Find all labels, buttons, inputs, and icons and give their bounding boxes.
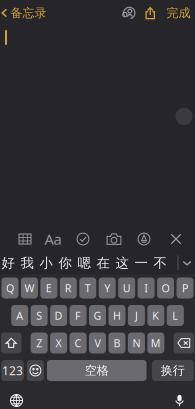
staticText: E xyxy=(46,281,52,295)
button[interactable]: Camera xyxy=(100,227,127,251)
staticText: 我 xyxy=(20,255,33,271)
button[interactable]: Close xyxy=(162,227,189,251)
button[interactable]: H xyxy=(108,305,125,326)
button[interactable]: L xyxy=(167,305,184,326)
staticText: S xyxy=(36,308,42,323)
button[interactable]: A xyxy=(11,305,28,326)
staticText: T xyxy=(85,281,91,295)
staticText: B xyxy=(113,336,120,350)
button[interactable]: I xyxy=(138,277,155,298)
button[interactable]: M xyxy=(147,332,164,353)
button[interactable]: B xyxy=(108,332,125,353)
staticText: 小 xyxy=(39,255,52,271)
staticText: W xyxy=(24,281,34,295)
staticText: L xyxy=(172,308,178,323)
staticText: N xyxy=(132,336,140,350)
button[interactable]: Y xyxy=(99,277,116,298)
button[interactable]: 我 xyxy=(17,253,36,273)
button[interactable]: C xyxy=(70,332,87,353)
button[interactable]: More candidates xyxy=(178,253,195,273)
button[interactable]: 换行 xyxy=(152,360,194,381)
button[interactable]: D xyxy=(50,305,67,326)
button[interactable]: G xyxy=(89,305,106,326)
button[interactable]: S xyxy=(31,305,48,326)
staticText: X xyxy=(56,336,62,350)
button[interactable]: Markup xyxy=(130,227,157,251)
staticText: O xyxy=(162,281,170,295)
staticText: I xyxy=(144,281,148,295)
staticText: 不 xyxy=(153,255,166,271)
button[interactable]: 在 xyxy=(93,253,112,273)
button[interactable]: P xyxy=(176,277,193,298)
staticText: 备忘录 xyxy=(10,6,46,20)
button[interactable]: R xyxy=(60,277,77,298)
button[interactable]: Quick Note xyxy=(175,108,192,125)
button[interactable]: 完成 xyxy=(161,2,195,24)
staticText: 一 xyxy=(134,255,147,271)
staticText: 好 xyxy=(1,255,14,271)
staticText: K xyxy=(152,308,159,323)
staticText: Aa xyxy=(44,229,61,249)
button[interactable]: 一 xyxy=(131,253,150,273)
button[interactable]: 备忘录 xyxy=(0,1,50,25)
button[interactable]: X xyxy=(50,332,67,353)
button[interactable]: Delete xyxy=(173,332,194,353)
staticText: H xyxy=(113,308,121,323)
button[interactable]: 你 xyxy=(55,253,74,273)
button[interactable]: 小 xyxy=(36,253,55,273)
staticText: J xyxy=(135,308,138,323)
staticText: 空格 xyxy=(85,363,109,378)
button[interactable]: Dictate xyxy=(168,389,191,409)
staticText: 嗯 xyxy=(77,255,90,271)
button[interactable]: Share xyxy=(139,3,161,23)
staticText: G xyxy=(93,308,101,323)
staticText: 完成 xyxy=(166,6,190,20)
staticText: Q xyxy=(6,281,14,295)
button[interactable]: 空格 xyxy=(47,360,147,381)
button[interactable]: Collaborate xyxy=(118,2,139,23)
button[interactable]: K xyxy=(147,305,164,326)
staticText: P xyxy=(182,281,188,295)
staticText: Z xyxy=(36,336,42,350)
button[interactable]: Switch keyboard xyxy=(5,389,28,409)
staticText: 123 xyxy=(2,362,23,378)
staticText: M xyxy=(151,336,161,350)
button[interactable]: Format xyxy=(39,227,66,251)
button[interactable]: F xyxy=(69,305,86,326)
button[interactable]: 好 xyxy=(0,253,17,273)
staticText: 你 xyxy=(58,255,71,271)
button[interactable]: W xyxy=(21,277,38,298)
staticText: D xyxy=(55,308,63,323)
staticText: 这 xyxy=(115,255,128,271)
button[interactable]: Q xyxy=(1,277,18,298)
staticText: C xyxy=(75,336,82,350)
button[interactable]: Table xyxy=(11,227,38,251)
button[interactable]: O xyxy=(157,277,174,298)
button[interactable]: Z xyxy=(31,332,48,353)
button[interactable]: 123 xyxy=(1,360,24,381)
staticText: A xyxy=(16,308,23,323)
staticText: U xyxy=(123,281,131,295)
button[interactable]: 嗯 xyxy=(74,253,93,273)
button[interactable]: Emoji xyxy=(27,360,44,381)
staticText: V xyxy=(94,336,100,350)
staticText: 换行 xyxy=(161,363,185,378)
button[interactable]: E xyxy=(40,277,57,298)
staticText: 在 xyxy=(96,255,109,271)
button[interactable]: 这 xyxy=(112,253,131,273)
button[interactable]: Checklist xyxy=(69,227,96,251)
button[interactable]: N xyxy=(128,332,145,353)
button[interactable]: T xyxy=(79,277,96,298)
button[interactable]: J xyxy=(128,305,145,326)
button[interactable]: V xyxy=(89,332,106,353)
button[interactable]: 不 xyxy=(150,253,169,273)
button[interactable]: Shift xyxy=(1,332,21,353)
staticText: Y xyxy=(104,281,110,295)
staticText: R xyxy=(65,281,72,295)
button[interactable]: U xyxy=(118,277,135,298)
staticText: F xyxy=(75,308,81,323)
